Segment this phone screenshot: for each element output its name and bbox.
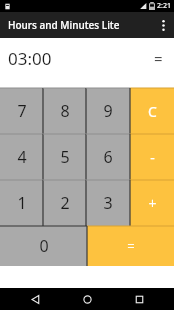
staticText: =: [127, 237, 135, 255]
staticText: =: [154, 48, 163, 68]
button[interactable]: 0: [0, 226, 87, 266]
button[interactable]: 4: [0, 134, 43, 180]
staticText: 8: [60, 100, 70, 122]
button[interactable]: 6: [86, 134, 130, 180]
button[interactable]: 8: [43, 88, 86, 134]
staticText: 1: [17, 192, 27, 214]
staticText: 6: [103, 146, 113, 168]
button[interactable]: Recent apps: [122, 288, 156, 310]
staticText: 5: [60, 146, 70, 168]
button[interactable]: 3: [86, 180, 130, 226]
staticText: -: [150, 148, 155, 167]
staticText: +: [148, 194, 157, 213]
staticText: 9: [103, 100, 113, 122]
button[interactable]: =: [87, 226, 174, 266]
staticText: 03:00: [8, 47, 52, 70]
staticText: Hours and Minutes Lite: [8, 18, 120, 32]
button[interactable]: 9: [86, 88, 130, 134]
button[interactable]: +: [130, 180, 174, 226]
staticText: C: [148, 102, 157, 121]
button[interactable]: 1: [0, 180, 43, 226]
staticText: 3: [103, 192, 113, 214]
staticText: 0: [39, 235, 49, 257]
button[interactable]: -: [130, 134, 174, 180]
button[interactable]: C: [130, 88, 174, 134]
staticText: 2: [60, 192, 70, 214]
button[interactable]: Back: [18, 288, 52, 310]
button[interactable]: 2: [43, 180, 86, 226]
staticText: 2:21: [157, 1, 171, 11]
button[interactable]: 7: [0, 88, 43, 134]
staticText: 4: [17, 146, 27, 168]
button[interactable]: More options: [152, 12, 174, 38]
button[interactable]: 5: [43, 134, 86, 180]
staticText: 7: [17, 100, 27, 122]
button[interactable]: Home: [70, 288, 104, 310]
